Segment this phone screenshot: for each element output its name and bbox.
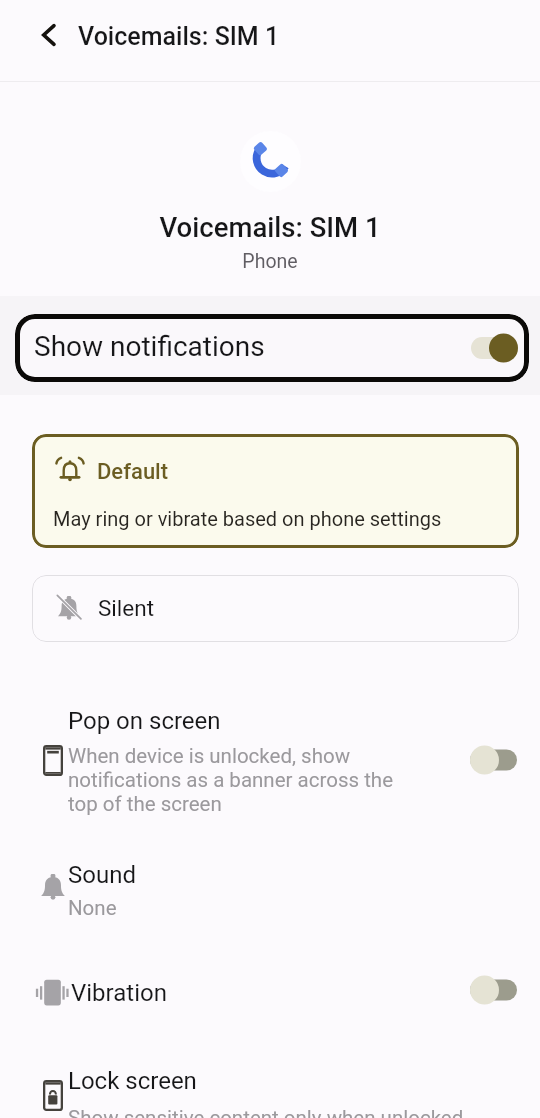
button[interactable]: Pop on screen (0, 690, 540, 820)
staticText: Show sensitive content only when unlocke… (68, 1106, 464, 1118)
button[interactable]: Default (32, 434, 519, 548)
staticText: Phone (242, 250, 298, 273)
staticText: May ring or vibrate based on phone setti… (53, 507, 442, 530)
staticText: Silent (98, 595, 155, 621)
button[interactable]: Vibration (0, 955, 540, 1023)
button[interactable]: Show notifications (15, 314, 529, 382)
staticText: Voicemails: SIM 1 (159, 211, 381, 243)
staticText: None (68, 896, 117, 920)
button[interactable]: Sound (0, 845, 540, 937)
staticText: Default (97, 459, 169, 485)
button[interactable]: Navigate up (24, 11, 72, 59)
staticText: Lock screen (68, 1067, 197, 1095)
staticText: Voicemails: SIM 1 (78, 22, 280, 51)
staticText: Vibration (71, 979, 167, 1007)
staticText: Show notifications (34, 330, 265, 363)
staticText: Sound (68, 861, 136, 889)
staticText: Pop on screen (68, 707, 221, 735)
button[interactable]: Silent (32, 575, 519, 642)
staticText: When device is unlocked, show notificati… (68, 744, 408, 816)
button[interactable]: Lock screen (0, 1044, 540, 1118)
